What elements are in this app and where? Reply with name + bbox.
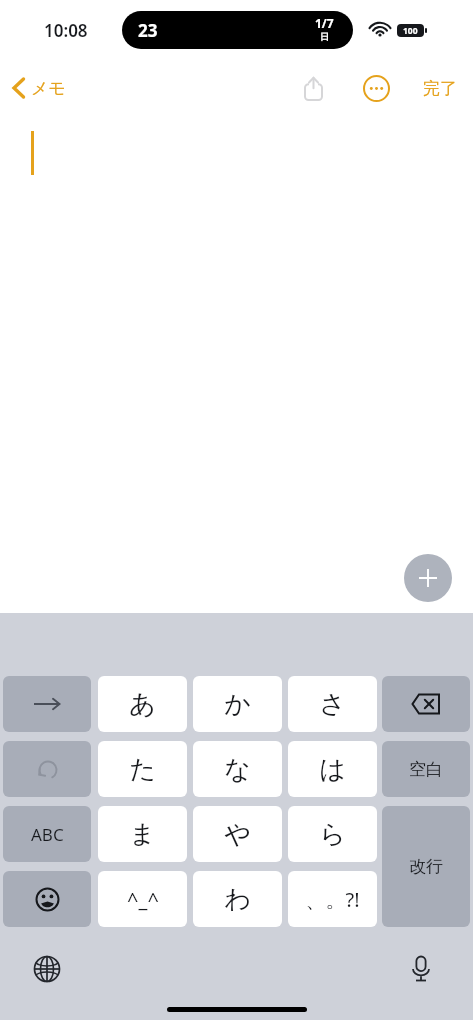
staticText: 完了 bbox=[423, 78, 457, 99]
staticText: 10:08 bbox=[44, 19, 88, 42]
button[interactable]: か bbox=[193, 676, 282, 732]
staticText: メモ bbox=[31, 78, 66, 99]
button[interactable]: Add attachment bbox=[404, 554, 452, 602]
button[interactable]: ま bbox=[98, 806, 187, 862]
button[interactable]: わ bbox=[193, 871, 282, 927]
staticText: か bbox=[224, 688, 251, 721]
button[interactable]: 、。?! bbox=[288, 871, 377, 927]
button[interactable]: や bbox=[193, 806, 282, 862]
staticText: 、。?! bbox=[305, 886, 360, 913]
staticText: 空白 bbox=[409, 759, 443, 780]
button[interactable]: メモ bbox=[8, 71, 70, 105]
staticText: あ bbox=[129, 688, 156, 721]
button[interactable]: Next candidate bbox=[3, 676, 91, 732]
staticText: 改行 bbox=[409, 856, 443, 877]
button[interactable]: Undo bbox=[3, 741, 91, 797]
staticText: さ bbox=[319, 688, 346, 721]
staticText: や bbox=[224, 818, 251, 851]
staticText: ^_^ bbox=[127, 886, 159, 913]
button[interactable]: 空白 bbox=[382, 741, 470, 797]
staticText: わ bbox=[224, 883, 251, 916]
staticText: ら bbox=[319, 818, 346, 851]
button[interactable]: あ bbox=[98, 676, 187, 732]
staticText: 1/7 bbox=[315, 15, 334, 31]
staticText: ABC bbox=[31, 823, 64, 846]
button[interactable]: Switch keyboard bbox=[26, 948, 68, 990]
button[interactable]: More options bbox=[359, 71, 393, 105]
button[interactable]: ら bbox=[288, 806, 377, 862]
staticText: 日 bbox=[320, 31, 329, 42]
staticText: な bbox=[224, 753, 251, 786]
button[interactable]: Share bbox=[296, 71, 330, 105]
button[interactable]: 改行 bbox=[382, 806, 470, 927]
staticText: は bbox=[319, 753, 346, 786]
staticText: 100 bbox=[403, 25, 418, 37]
button[interactable]: ^_^ bbox=[98, 871, 187, 927]
button[interactable]: た bbox=[98, 741, 187, 797]
button[interactable]: は bbox=[288, 741, 377, 797]
button[interactable]: な bbox=[193, 741, 282, 797]
button[interactable]: さ bbox=[288, 676, 377, 732]
staticText: 23 bbox=[138, 19, 158, 42]
button[interactable]: 完了 bbox=[419, 72, 461, 105]
staticText: た bbox=[129, 753, 156, 786]
button[interactable]: Dictation bbox=[400, 948, 442, 990]
button[interactable]: Delete bbox=[382, 676, 470, 732]
button[interactable]: ABC bbox=[3, 806, 91, 862]
staticText: ま bbox=[129, 818, 156, 851]
button[interactable]: Emoji bbox=[3, 871, 91, 927]
